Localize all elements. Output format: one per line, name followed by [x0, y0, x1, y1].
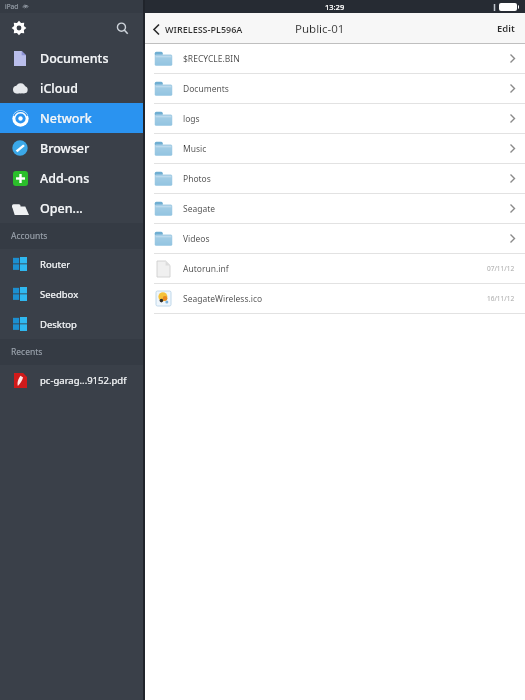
staticText: 07/11/12 — [487, 264, 515, 273]
button[interactable]: Open... — [0, 193, 143, 223]
staticText: Recents — [11, 346, 43, 358]
staticText: 13:29 — [325, 2, 345, 12]
button[interactable]: Router — [0, 249, 143, 279]
button[interactable]: Seagate — [145, 194, 525, 224]
staticText: Desktop — [40, 318, 77, 331]
staticText: pc-garag...9152.pdf — [40, 374, 127, 387]
button[interactable]: Edit — [487, 17, 525, 40]
staticText: Accounts — [11, 230, 48, 242]
staticText: Router — [40, 258, 71, 271]
staticText: Photos — [183, 173, 510, 185]
staticText: Seagate — [183, 203, 510, 215]
button[interactable]: Desktop — [0, 309, 143, 339]
staticText: Network — [40, 110, 92, 127]
staticText: Videos — [183, 233, 510, 245]
button[interactable]: logs — [145, 104, 525, 134]
staticText: Public-01 — [295, 21, 345, 37]
staticText: iPad — [5, 2, 19, 11]
staticText: Documents — [40, 50, 109, 67]
staticText: Seedbox — [40, 288, 79, 301]
button[interactable]: Add-ons — [0, 163, 143, 193]
button[interactable]: Documents — [0, 43, 143, 73]
staticText: Documents — [183, 83, 510, 95]
button[interactable]: SeagateWireless.ico — [145, 284, 525, 314]
staticText: Music — [183, 143, 510, 155]
button[interactable]: Videos — [145, 224, 525, 254]
button[interactable]: pc-garag...9152.pdf — [0, 365, 143, 395]
button[interactable]: Autorun.inf — [145, 254, 525, 284]
button[interactable]: Browser — [0, 133, 143, 163]
button[interactable]: iCloud — [0, 73, 143, 103]
button[interactable]: Search — [111, 17, 133, 39]
staticText: logs — [183, 113, 510, 125]
button[interactable]: Network — [0, 103, 143, 133]
staticText: iCloud — [40, 80, 78, 97]
staticText: Edit — [497, 22, 515, 35]
button[interactable]: Seedbox — [0, 279, 143, 309]
staticText: WIRELESS-PL596A — [165, 23, 243, 35]
staticText: Autorun.inf — [183, 263, 487, 275]
button[interactable]: Documents — [145, 74, 525, 104]
staticText: SeagateWireless.ico — [183, 293, 487, 305]
staticText: Add-ons — [40, 170, 90, 187]
button[interactable]: Music — [145, 134, 525, 164]
staticText: Browser — [40, 140, 90, 157]
staticText: Open... — [40, 200, 83, 217]
button[interactable]: Photos — [145, 164, 525, 194]
button[interactable]: Settings — [8, 17, 30, 39]
staticText: $RECYCLE.BIN — [183, 53, 510, 65]
staticText: 16/11/12 — [487, 294, 515, 303]
button[interactable]: WIRELESS-PL596A — [145, 19, 251, 39]
button[interactable]: $RECYCLE.BIN — [145, 44, 525, 74]
